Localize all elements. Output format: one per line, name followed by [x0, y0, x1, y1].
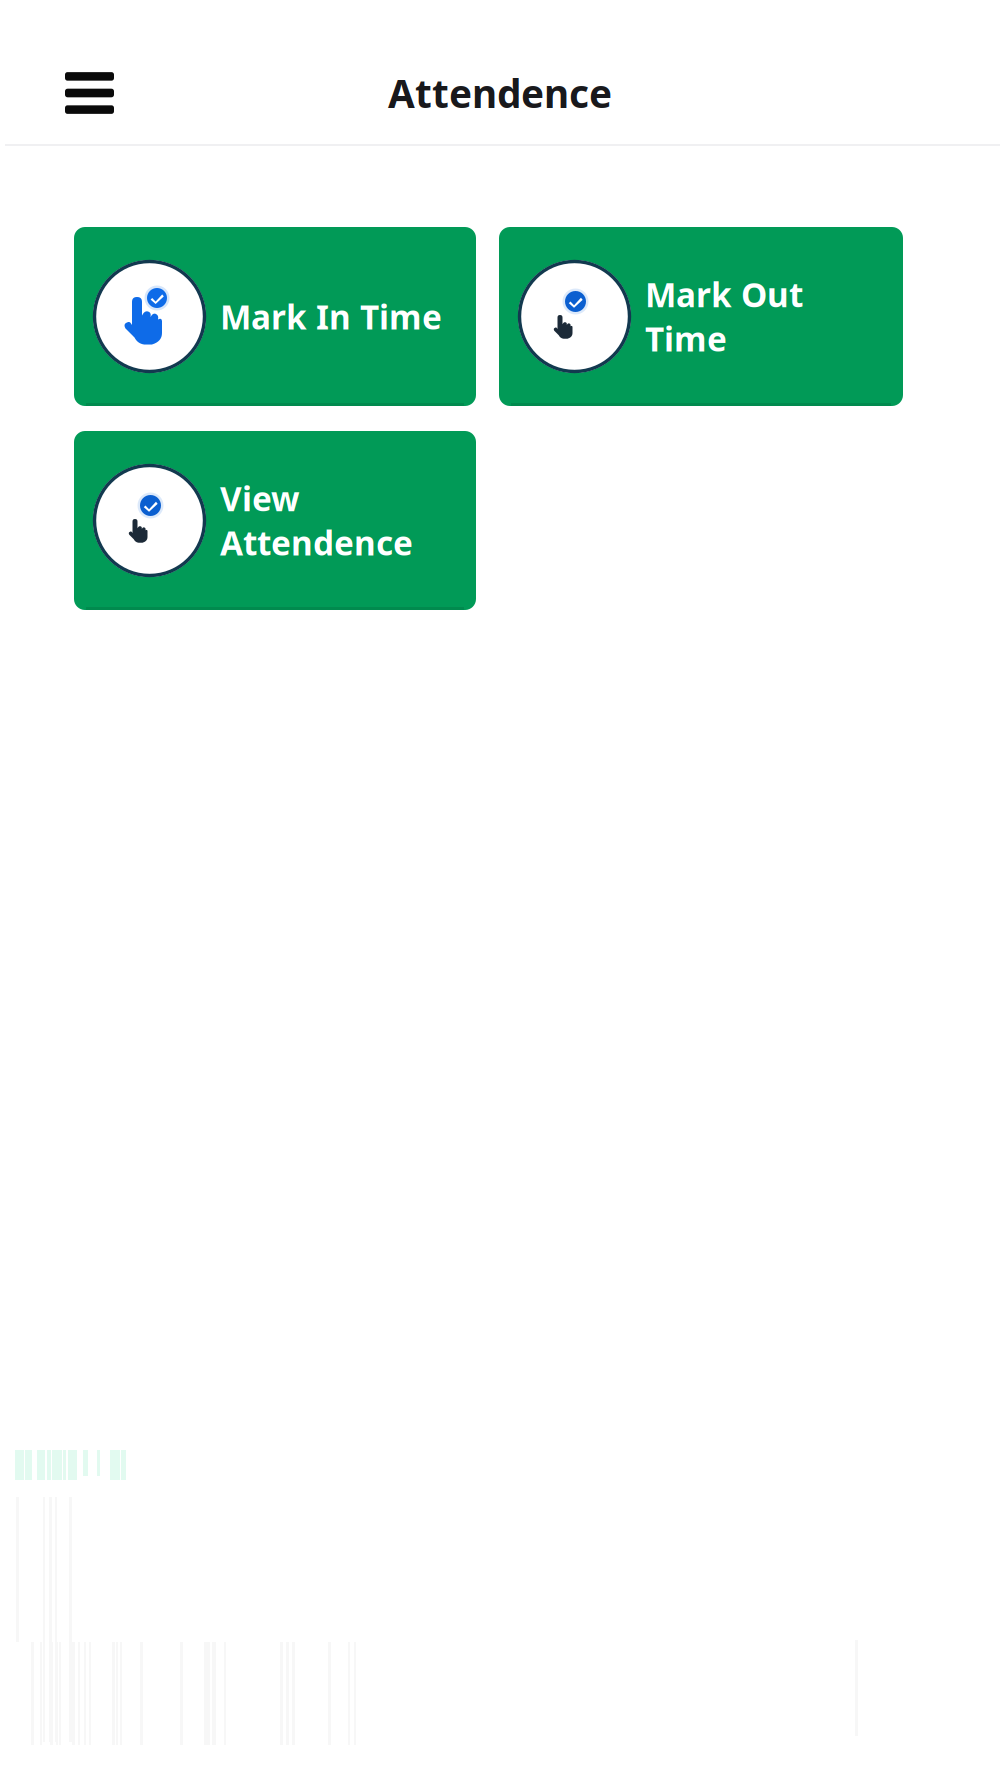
staticText: Attendence	[388, 67, 612, 119]
button[interactable]: Mark In Time	[74, 227, 476, 406]
button[interactable]: Menu	[0, 48, 140, 138]
staticText: View Attendence	[220, 476, 413, 565]
button[interactable]: View Attendence	[74, 431, 476, 610]
staticText: Mark In Time	[220, 294, 442, 339]
staticText: Mark Out Time	[645, 272, 803, 361]
button[interactable]: Mark Out Time	[499, 227, 903, 406]
